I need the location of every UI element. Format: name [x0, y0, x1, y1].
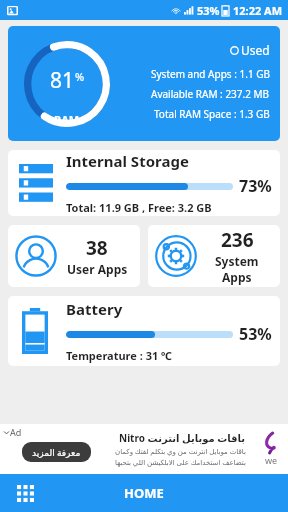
- staticText: 81: [50, 66, 75, 95]
- staticText: Nitro باقات موبايل انترنت: [119, 431, 246, 445]
- staticText: Used: [241, 42, 270, 58]
- staticText: we: [265, 454, 278, 466]
- button[interactable]: User apps: [8, 225, 140, 287]
- staticText: Battery: [66, 299, 123, 319]
- button[interactable]: Battery: [8, 296, 280, 366]
- other: User apps: [14, 234, 58, 278]
- staticText: Internal Storage: [66, 151, 189, 171]
- staticText: HOME: [124, 484, 164, 502]
- staticText: معرفة المزيد: [32, 446, 81, 458]
- staticText: 53%: [239, 323, 272, 345]
- button[interactable]: معرفة المزيد: [22, 442, 91, 462]
- button[interactable]: 81: [8, 26, 280, 141]
- staticText: Available RAM : 237.2 MB: [151, 87, 270, 101]
- staticText: بتضاعف استخدامك على الابلكيشن اللي بتحبه…: [115, 458, 246, 468]
- staticText: RAM: [54, 112, 80, 127]
- staticText: 53%: [197, 3, 220, 18]
- staticText: Total: 11.9 GB , Free: 3.2 GB: [66, 200, 212, 215]
- other: Battery: [22, 308, 48, 354]
- staticText: Total RAM Space : 1.3 GB: [154, 107, 270, 121]
- staticText: باقات موبايل انترنت من وي بتكلم لفتك وكم…: [115, 447, 246, 457]
- staticText: 38: [86, 235, 108, 261]
- staticText: 12:22 AM: [233, 3, 283, 18]
- staticText: %: [75, 69, 85, 84]
- staticText: System: [215, 253, 259, 269]
- staticText: Apps: [222, 269, 252, 285]
- button[interactable]: HOME: [104, 478, 184, 508]
- staticText: System and Apps : 1.1 GB: [151, 67, 270, 81]
- button[interactable]: System apps: [148, 225, 280, 287]
- staticText: 236: [221, 227, 254, 253]
- other: Storage: [19, 164, 53, 202]
- other: System apps: [154, 234, 198, 278]
- staticText: User Apps: [67, 261, 128, 277]
- staticText: Temperature : 31 ℃: [66, 348, 173, 363]
- button[interactable]: Apps menu: [8, 476, 42, 510]
- staticText: Ad: [10, 426, 22, 438]
- button[interactable]: Ad: [0, 424, 288, 474]
- button[interactable]: Storage: [8, 150, 280, 216]
- staticText: 73%: [239, 175, 272, 197]
